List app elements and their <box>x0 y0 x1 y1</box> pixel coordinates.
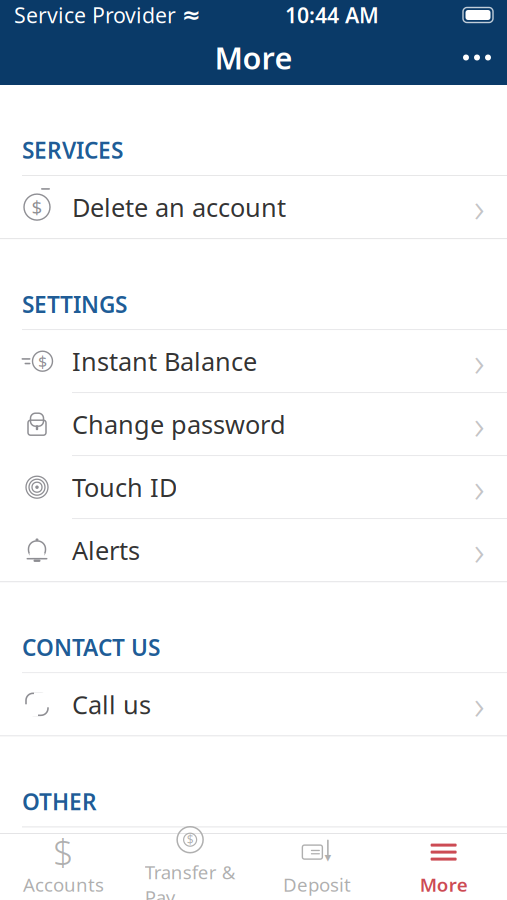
staticText: Touch ID <box>72 470 177 504</box>
staticText: Alerts <box>72 533 140 567</box>
staticText: › <box>474 461 485 514</box>
staticText: Call us <box>72 687 151 721</box>
button[interactable]: Touch ID <box>0 456 507 518</box>
staticText: › <box>474 524 485 577</box>
staticText: Change password <box>72 407 286 441</box>
staticText: OTHER <box>22 786 97 816</box>
staticText: CONTACT US <box>22 632 160 662</box>
button[interactable]: Call us <box>0 673 507 735</box>
staticText: › <box>474 335 485 388</box>
button[interactable]: More options <box>447 35 507 79</box>
staticText: SETTINGS <box>22 289 127 319</box>
button[interactable]: $ <box>127 834 254 900</box>
staticText: Instant Balance <box>72 344 257 378</box>
staticText: Transfer & Pay <box>145 860 236 900</box>
button[interactable]: $ <box>0 834 127 900</box>
staticText: SERVICES <box>22 135 123 165</box>
staticText: › <box>474 180 485 234</box>
button[interactable]: $ <box>0 330 507 392</box>
staticText: More <box>420 872 468 897</box>
button[interactable]: More <box>380 834 507 900</box>
staticText: Service Provider <box>14 1 176 29</box>
staticText: 10:44 AM <box>285 1 379 29</box>
staticText: › <box>474 398 485 451</box>
staticText: $ <box>38 351 47 372</box>
staticText: $ <box>53 828 74 876</box>
staticText: More <box>214 37 292 78</box>
staticText: Accounts <box>23 872 104 897</box>
staticText: Delete an account <box>72 190 286 224</box>
button[interactable]: $ <box>0 176 507 238</box>
staticText: › <box>474 678 485 731</box>
staticText: Deposit <box>283 872 351 897</box>
staticText: ▾ <box>324 849 331 865</box>
staticText: $ <box>187 832 194 848</box>
staticText: ≈ <box>182 2 201 28</box>
button[interactable]: Alerts <box>0 519 507 581</box>
staticText: $ <box>31 195 42 219</box>
button[interactable]: ▾ <box>253 834 380 900</box>
button[interactable]: Change password <box>0 393 507 455</box>
